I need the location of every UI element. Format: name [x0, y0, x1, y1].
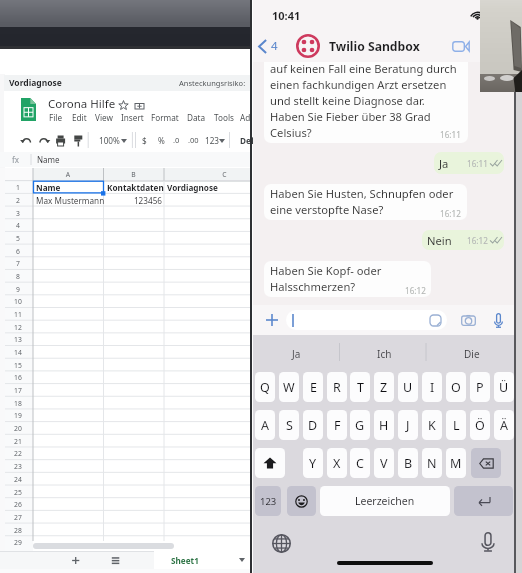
button[interactable]: V: [374, 448, 394, 478]
button[interactable]: Ü: [494, 372, 514, 402]
button[interactable]: 4: [258, 31, 278, 61]
staticText: 3: [5, 209, 31, 218]
staticText: W: [283, 379, 295, 396]
staticText: 23: [5, 462, 31, 471]
staticText: E: [310, 379, 317, 396]
staticText: 29: [5, 538, 31, 547]
staticText: Haben Sie Kopf- oder Halsschmerzen?: [270, 263, 382, 294]
staticText: U: [403, 379, 413, 396]
staticText: Ü: [499, 379, 509, 396]
button[interactable]: Ä: [494, 410, 514, 440]
button[interactable]: Twilio Sandbox: [293, 31, 413, 61]
button[interactable]: X: [327, 448, 347, 478]
staticText: auf keinen Fall eine Beratung durch eine…: [270, 62, 457, 140]
button[interactable]: A: [255, 410, 275, 440]
staticText: Kontaktdaten: [107, 182, 164, 193]
button[interactable]: Haben Sie Husten, Schnupfen oder eine ve…: [264, 184, 467, 220]
staticText: 2: [5, 196, 31, 205]
button[interactable]: L: [446, 410, 466, 440]
staticText: X: [333, 455, 341, 472]
staticText: I: [430, 379, 435, 396]
button[interactable]: C: [350, 448, 370, 478]
button[interactable]: R: [327, 372, 347, 402]
button[interactable]: Haben Sie Kopf- oder Halsschmerzen?: [264, 261, 431, 297]
staticText: 28: [5, 526, 31, 535]
button[interactable]: K: [422, 410, 442, 440]
staticText: Leerzeichen: [355, 494, 415, 508]
button[interactable]: Ja: [253, 335, 340, 372]
button[interactable]: Ja: [434, 152, 504, 174]
staticText: Edit: [72, 112, 87, 123]
button[interactable]: W: [279, 372, 299, 402]
staticText: Ad: [240, 112, 251, 123]
button[interactable]: Die: [428, 335, 516, 372]
staticText: G: [355, 417, 365, 434]
button[interactable]: G: [350, 410, 370, 440]
button[interactable]: Ö: [470, 410, 490, 440]
staticText: T: [357, 379, 364, 396]
button[interactable]: B: [398, 448, 418, 478]
button[interactable]: Switch keyboard: [267, 529, 295, 557]
staticText: fx: [12, 154, 19, 165]
staticText: 16:11: [467, 158, 488, 169]
staticText: 24: [5, 475, 31, 484]
button[interactable]: Z: [374, 372, 394, 402]
staticText: 100%: [99, 135, 120, 146]
staticText: 14: [5, 348, 31, 357]
button[interactable]: Shift: [255, 448, 285, 478]
button[interactable]: Video call preview: [480, 0, 522, 92]
staticText: Ich: [377, 347, 392, 361]
button[interactable]: U: [398, 372, 418, 402]
staticText: 4: [271, 38, 278, 54]
staticText: B: [404, 455, 413, 472]
staticText: $: [142, 135, 147, 146]
staticText: 20: [5, 424, 31, 433]
button[interactable]: M: [446, 448, 466, 478]
staticText: 16:12: [467, 235, 488, 246]
button[interactable]: 123: [255, 486, 281, 516]
staticText: 123: [205, 135, 220, 146]
button[interactable]: Emoji: [287, 486, 316, 516]
staticText: 123: [260, 495, 277, 508]
staticText: Insert: [121, 112, 144, 123]
staticText: 13: [5, 335, 31, 344]
button[interactable]: S: [279, 410, 299, 440]
button[interactable]: P: [470, 372, 490, 402]
button[interactable]: N: [422, 448, 442, 478]
button[interactable]: Video call: [446, 31, 476, 61]
button[interactable]: Attach: [259, 305, 285, 335]
staticText: 5: [5, 234, 31, 243]
button[interactable]: T: [350, 372, 370, 402]
staticText: 123456: [104, 195, 162, 206]
button[interactable]: Camera: [455, 305, 481, 335]
button[interactable]: Dictation: [474, 528, 502, 556]
button[interactable]: Voice message: [485, 305, 511, 335]
button[interactable]: Nein: [422, 230, 504, 250]
button[interactable]: D: [303, 410, 323, 440]
staticText: 16:12: [405, 285, 426, 296]
button[interactable]: I: [422, 372, 442, 402]
staticText: Name: [37, 154, 60, 165]
button[interactable]: H: [374, 410, 394, 440]
staticText: Ansteckungsrisiko:: [179, 78, 246, 88]
button[interactable]: Ich: [340, 335, 428, 372]
staticText: 19: [5, 411, 31, 420]
button[interactable]: Q: [255, 372, 275, 402]
button[interactable]: Return: [454, 486, 513, 516]
staticText: P: [476, 379, 484, 396]
staticText: 16: [5, 373, 31, 382]
button[interactable]: E: [303, 372, 323, 402]
button[interactable]: Sheet1: [154, 551, 251, 569]
button[interactable]: auf keinen Fall eine Beratung durch eine…: [264, 62, 468, 143]
staticText: 27: [5, 513, 31, 522]
staticText: 9: [5, 285, 31, 294]
button[interactable]: [286, 310, 447, 330]
button[interactable]: Backspace: [471, 448, 501, 478]
button[interactable]: F: [327, 410, 347, 440]
button[interactable]: Y: [303, 448, 323, 478]
button[interactable]: O: [446, 372, 466, 402]
staticText: Format: [151, 112, 179, 123]
button[interactable]: J: [398, 410, 418, 440]
staticText: Ö: [475, 417, 485, 434]
button[interactable]: Leerzeichen: [320, 486, 450, 516]
